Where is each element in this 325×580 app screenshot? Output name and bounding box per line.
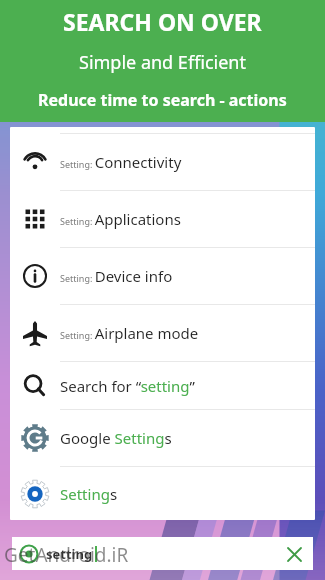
button[interactable]: Search for “setting” — [10, 361, 315, 409]
button[interactable]: Setting: Airplane mode — [10, 304, 315, 361]
staticText: Setting: Connectivity — [60, 152, 182, 172]
staticText: Simple and Efficient — [79, 50, 246, 75]
button[interactable]: Settings — [10, 466, 315, 520]
button[interactable]: Google Settings — [10, 409, 315, 466]
staticText: Setting: Device info — [60, 266, 173, 286]
staticText: SEARCH ON OVER — [63, 6, 262, 37]
button[interactable]: Setting: Device info — [10, 247, 315, 304]
button[interactable]: Setting: Connectivity — [10, 133, 315, 190]
staticText: setting — [46, 545, 93, 563]
staticText: Reduce time to search - actions — [38, 89, 287, 111]
staticText: Setting: Airplane mode — [60, 323, 199, 343]
staticText: GetAndroid.iR — [4, 542, 129, 568]
staticText: Setting: Applications — [60, 209, 181, 229]
staticText: Settings — [60, 484, 118, 504]
button[interactable]: Setting: Applications — [10, 190, 315, 247]
button[interactable]: setting — [12, 537, 313, 570]
staticText: Google Settings — [60, 428, 172, 448]
button[interactable]: Clear search — [283, 543, 305, 565]
staticText: Search for “setting” — [60, 376, 195, 396]
